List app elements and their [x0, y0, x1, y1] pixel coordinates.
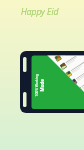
button[interactable]: Mobile app promo	[0, 0, 84, 150]
